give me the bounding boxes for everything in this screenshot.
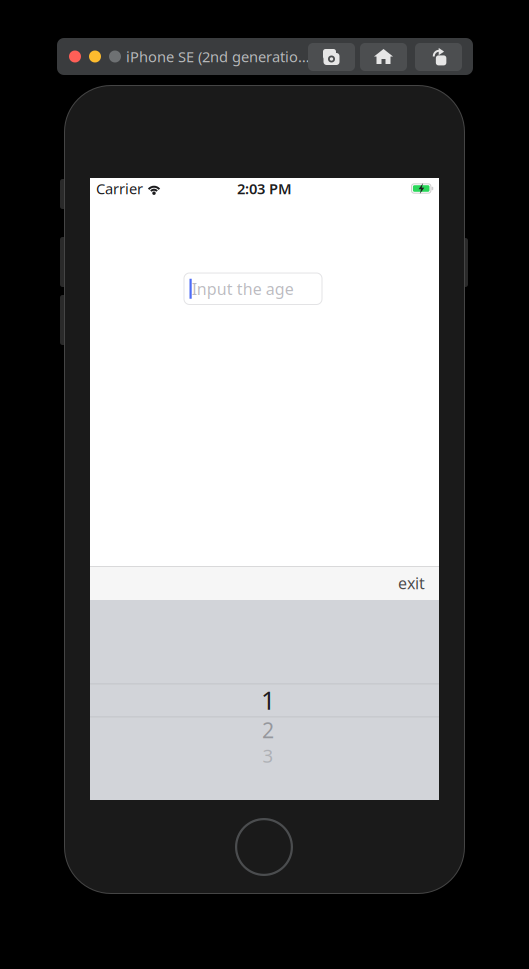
button[interactable]: Rotate (415, 43, 462, 71)
button[interactable]: Screenshot (308, 43, 355, 71)
staticText: 3 (262, 743, 273, 768)
staticText: 2 (262, 716, 274, 744)
staticText: Input the age (192, 278, 294, 299)
staticText: 1 (261, 683, 275, 717)
staticText: Carrier (96, 179, 143, 198)
staticText: iPhone SE (2nd generatio… (126, 47, 310, 66)
button[interactable]: Input the age (183, 272, 322, 305)
button[interactable]: exit (388, 565, 435, 601)
staticText: exit (398, 572, 425, 594)
staticText: 2:03 PM (237, 179, 292, 198)
button[interactable]: Home (360, 43, 407, 71)
